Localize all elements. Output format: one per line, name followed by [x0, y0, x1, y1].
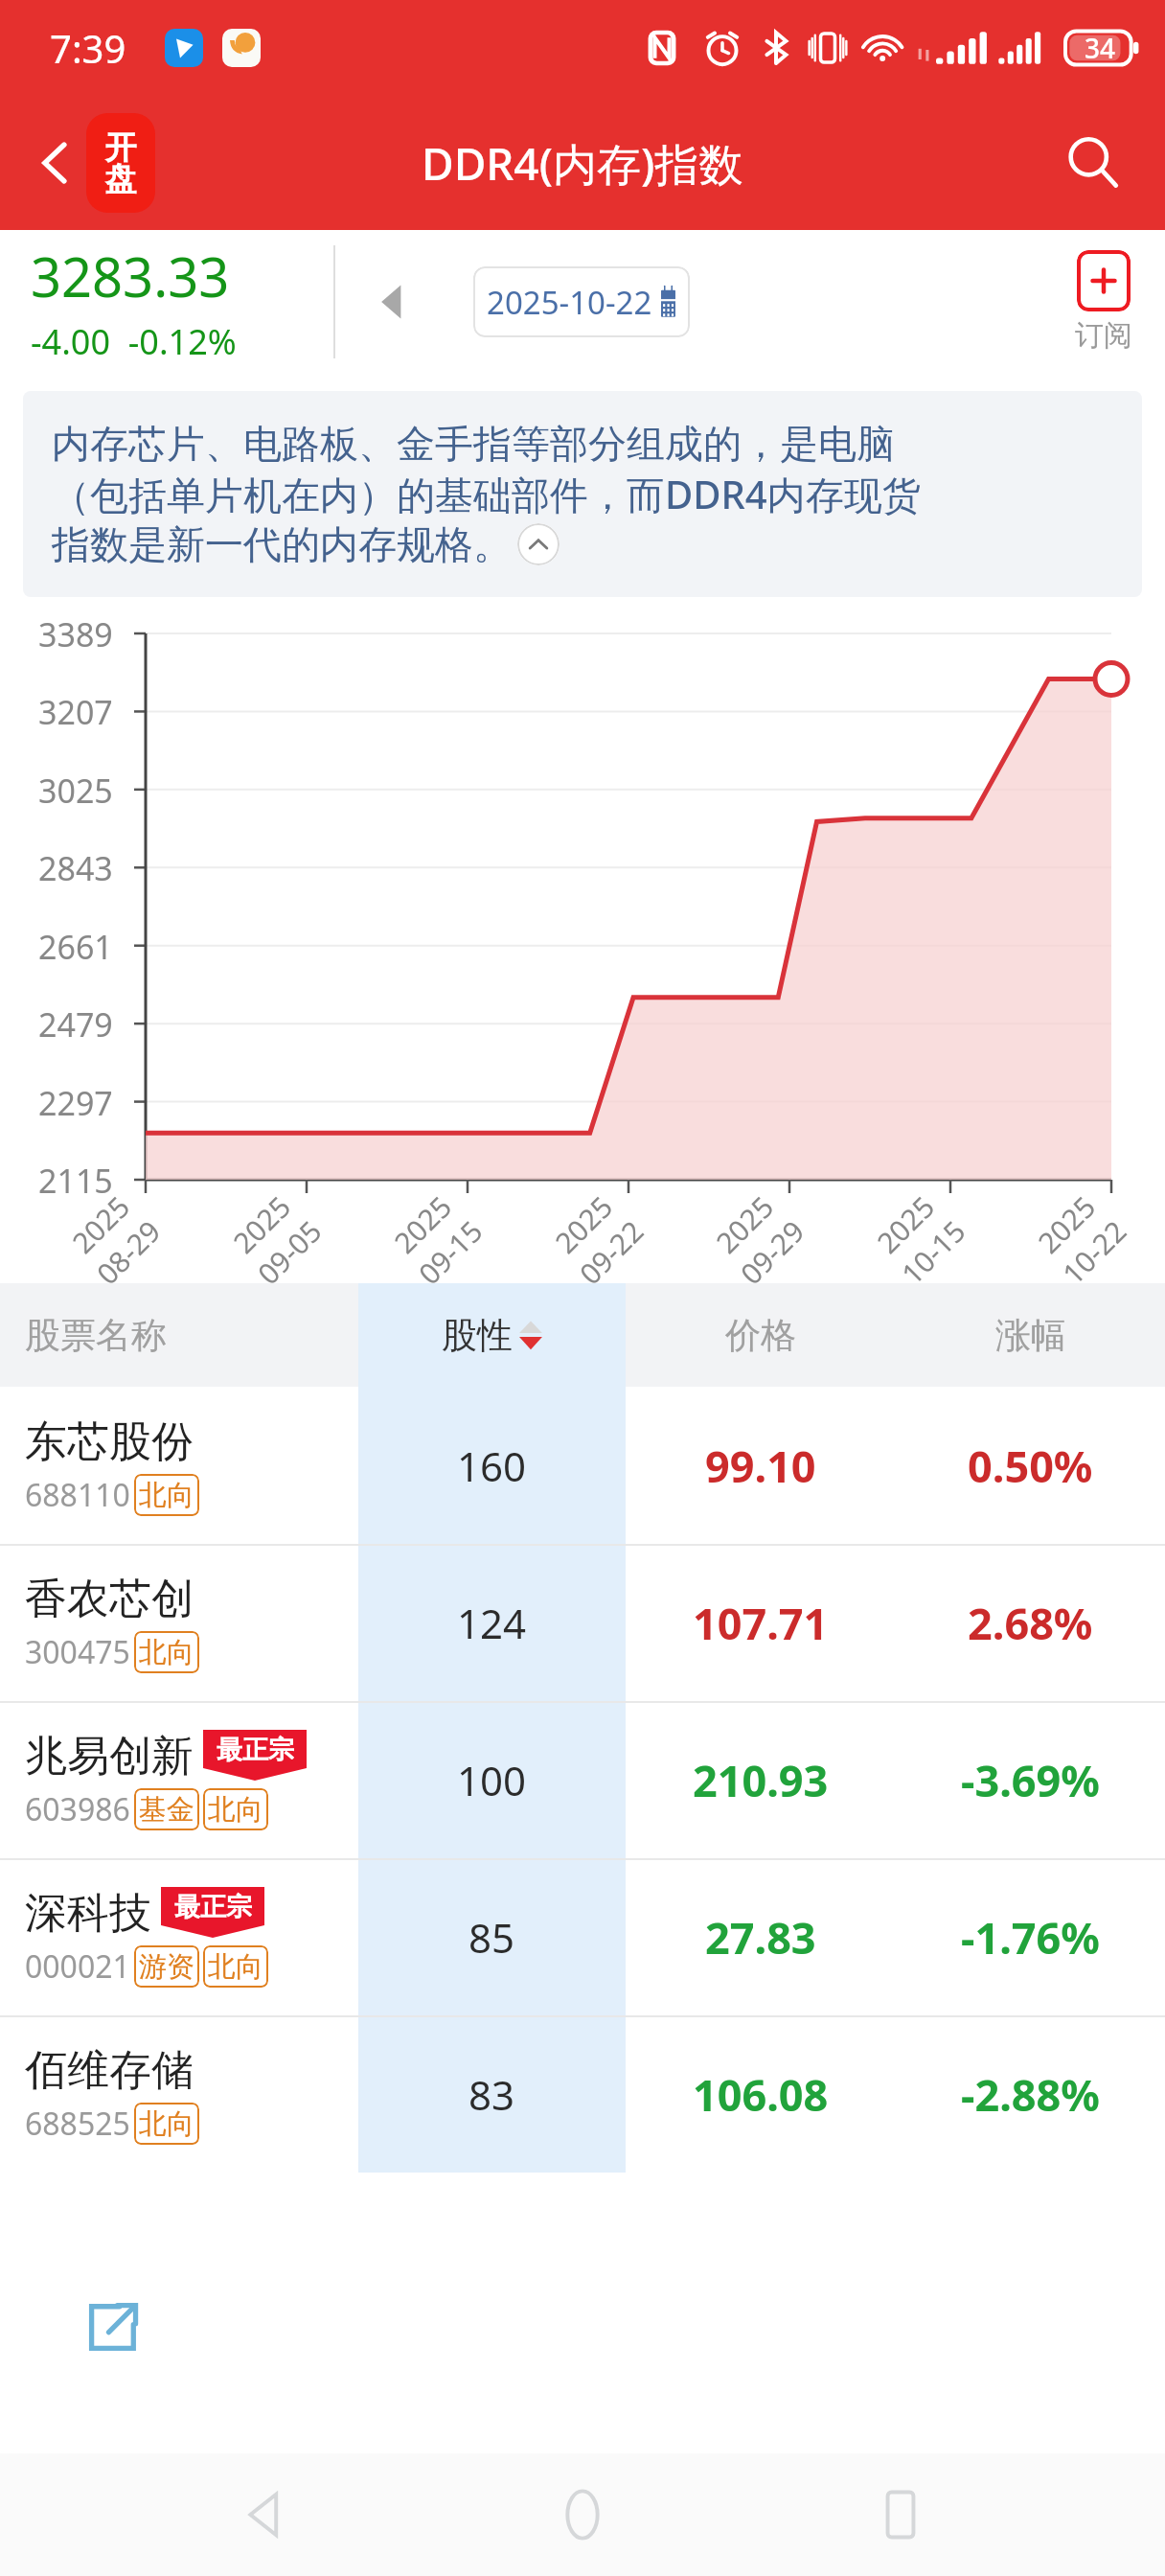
staticText: 09-22 [571, 1211, 652, 1293]
staticText: 股性 [442, 1313, 513, 1358]
staticText: -3.69% [961, 1751, 1100, 1809]
staticText: 107.71 [693, 1594, 829, 1652]
staticText: 2661 [38, 925, 113, 969]
staticText: 2025 [707, 1187, 782, 1262]
staticText: 北向 [139, 1478, 194, 1513]
staticText: 3283.33 [31, 240, 230, 312]
staticText: 688110 [25, 1474, 130, 1516]
staticText: 佰维存储 [25, 2044, 194, 2097]
staticText: 27.83 [705, 1908, 816, 1966]
button[interactable]: 香农芯创 [0, 1544, 1165, 1701]
staticText: 000021 [25, 1945, 130, 1988]
staticText: 2297 [38, 1081, 113, 1125]
staticText: 2025 [224, 1187, 299, 1262]
button[interactable]: 前一日 [358, 266, 429, 337]
staticText: 300475 [25, 1631, 130, 1673]
staticText: 北向 [208, 1792, 263, 1828]
staticText: 北向 [139, 1635, 194, 1670]
staticText: 09-29 [732, 1211, 813, 1293]
staticText: 124 [457, 1596, 527, 1650]
staticText: DDR4(内存)指数 [422, 133, 743, 194]
button[interactable]: 股票名称 [25, 1313, 167, 1358]
staticText: 0.50% [968, 1437, 1093, 1495]
staticText: 内存芯片、电路板、金手指等部分组成的，是电脑 [52, 420, 895, 468]
button[interactable]: 东芯股份 [0, 1387, 1165, 1544]
staticText: 100 [457, 1753, 527, 1807]
button[interactable]: 内存芯片、电路板、金手指等部分组成的，是电脑 [23, 391, 1142, 597]
button[interactable]: 收起 [517, 523, 560, 565]
staticText: 106.08 [693, 2065, 829, 2124]
staticText: 北向 [139, 2106, 194, 2142]
staticText: 2025 [546, 1187, 621, 1262]
button[interactable]: 兆易创新 [0, 1701, 1165, 1858]
button[interactable]: 2025-10-22 [473, 266, 690, 337]
staticText: 2025 [868, 1187, 943, 1262]
button[interactable]: 分享 [59, 2273, 167, 2380]
staticText: （包括单片机在内）的基础部件，而DDR4内存现货 [52, 468, 921, 520]
button[interactable]: 主屏幕 [530, 2462, 635, 2567]
staticText: 08-29 [88, 1211, 169, 1293]
staticText: 3389 [38, 612, 113, 656]
button[interactable]: 股性 [358, 1283, 626, 1387]
staticText: 开盘 [99, 127, 143, 199]
staticText: 游资 [139, 1949, 194, 1985]
staticText: 北向 [208, 1949, 263, 1985]
staticText: 订阅 [1075, 317, 1132, 354]
staticText: 3025 [38, 769, 113, 813]
button[interactable]: 订阅 [1071, 246, 1136, 357]
button[interactable]: 佰维存储 [0, 2015, 1165, 2173]
staticText: 7:39 [50, 22, 126, 74]
staticText: 85 [468, 1910, 515, 1965]
staticText: 最正宗 [174, 1891, 252, 1923]
staticText: 99.10 [705, 1437, 816, 1495]
staticText: 603986 [25, 1788, 130, 1830]
staticText: 3207 [38, 690, 113, 734]
button[interactable]: 深科技 [0, 1858, 1165, 2015]
staticText: 09-05 [249, 1211, 330, 1293]
button[interactable]: 最近任务 [848, 2462, 953, 2567]
button[interactable]: 返回 [213, 2462, 318, 2567]
staticText: 83 [468, 2067, 515, 2122]
staticText: 涨幅 [995, 1313, 1066, 1358]
staticText: 10-15 [893, 1211, 974, 1293]
staticText: 688525 [25, 2103, 130, 2145]
staticText: 10-22 [1053, 1211, 1135, 1293]
staticText: 160 [457, 1438, 527, 1493]
staticText: 东芯股份 [25, 1415, 194, 1468]
button[interactable]: 返回 开盘 [21, 107, 163, 218]
staticText: 2843 [38, 846, 113, 890]
staticText: 基金 [139, 1792, 194, 1828]
staticText: 指数是新一代的内存规格。 [52, 520, 512, 568]
staticText: 兆易创新 [25, 1730, 194, 1782]
staticText: 深科技 [25, 1887, 151, 1940]
staticText: 34 [1085, 30, 1116, 66]
staticText: -1.76% [961, 1908, 1100, 1966]
staticText: -2.88% [961, 2065, 1100, 2124]
button[interactable]: 价格 [626, 1283, 896, 1387]
staticText: 2025 [63, 1187, 138, 1262]
staticText: 2025-10-22 [487, 281, 652, 324]
staticText: 2025 [1029, 1187, 1104, 1262]
staticText: 最正宗 [217, 1734, 294, 1766]
button[interactable]: 搜索 [1056, 126, 1129, 199]
button[interactable]: 涨幅 [896, 1283, 1165, 1387]
staticText: 香农芯创 [25, 1573, 194, 1625]
staticText: 09-15 [410, 1211, 491, 1293]
staticText: 2025 [385, 1187, 460, 1262]
staticText: 210.93 [693, 1751, 829, 1809]
staticText: 2.68% [968, 1594, 1093, 1652]
staticText: 2115 [38, 1159, 113, 1203]
staticText: -4.00 -0.12% [31, 318, 237, 365]
staticText: 2479 [38, 1002, 113, 1046]
staticText: 价格 [725, 1313, 796, 1358]
